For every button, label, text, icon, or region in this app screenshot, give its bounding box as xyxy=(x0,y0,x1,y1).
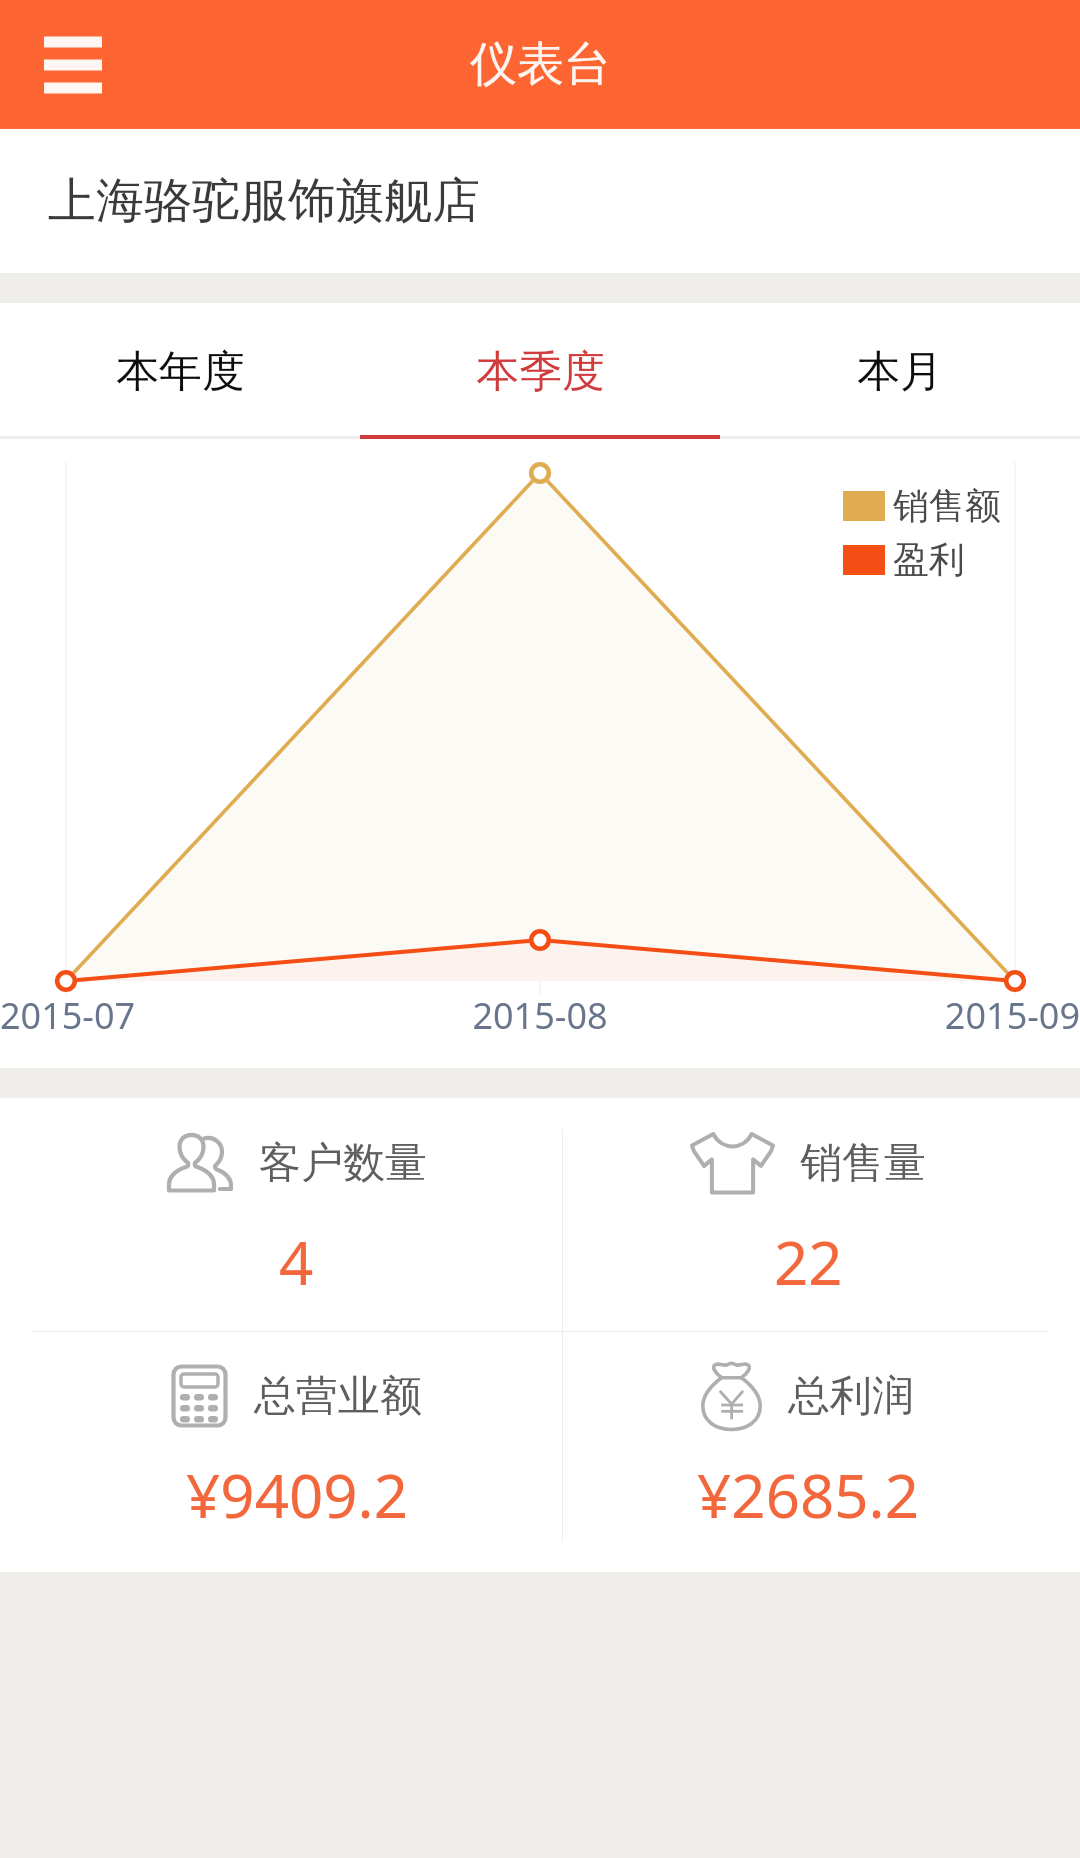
staticText: ¥2685.2 xyxy=(697,1454,919,1536)
staticText: ¥9409.2 xyxy=(186,1454,408,1536)
staticText: 22 xyxy=(774,1221,843,1303)
staticText: 本月 xyxy=(857,345,943,399)
staticText: 盈利 xyxy=(893,537,965,582)
staticText: 2015-08 xyxy=(360,991,720,1040)
button[interactable]: 本年度 xyxy=(0,303,360,439)
staticText: 本年度 xyxy=(116,345,245,399)
button[interactable]: 本月 xyxy=(720,303,1080,439)
staticText: 销售额 xyxy=(893,483,1001,528)
staticText: 销售量 xyxy=(800,1137,926,1190)
staticText: 客户数量 xyxy=(259,1137,427,1190)
staticText: 4 xyxy=(279,1221,314,1303)
staticText: 本季度 xyxy=(476,345,605,399)
button[interactable]: 销售量 xyxy=(567,1098,1049,1331)
staticText: 2015-07 xyxy=(0,991,360,1040)
button[interactable]: 本季度 xyxy=(360,303,720,439)
staticText: 2015-09 xyxy=(720,991,1080,1040)
staticText: 总营业额 xyxy=(254,1370,422,1423)
staticText: 上海骆驼服饰旗舰店 xyxy=(48,171,480,231)
staticText: 仪表台 xyxy=(470,35,611,94)
button[interactable]: 总营业额 xyxy=(31,1332,562,1572)
button[interactable]: Open navigation menu xyxy=(24,16,122,114)
staticText: 总利润 xyxy=(788,1370,914,1423)
button[interactable]: 客户数量 xyxy=(31,1098,562,1331)
button[interactable]: 总利润 xyxy=(567,1332,1049,1572)
